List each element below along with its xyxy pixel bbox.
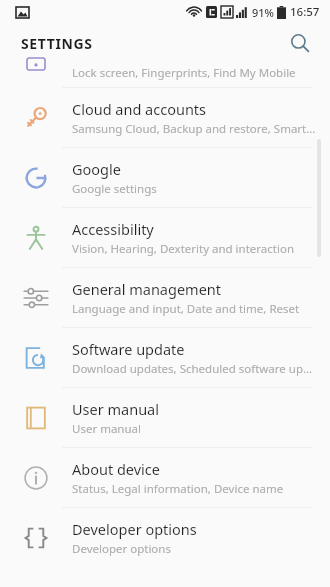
staticText: Developer options: [72, 519, 197, 539]
staticText: Status, Legal information, Device name: [72, 481, 284, 497]
button[interactable]: Accessibility: [0, 208, 330, 268]
staticText: Language and input, Date and time, Reset: [72, 301, 300, 317]
button[interactable]: Developer options: [0, 508, 330, 568]
button[interactable]: General management: [0, 268, 330, 328]
staticText: SETTINGS: [21, 34, 93, 53]
staticText: Accessibility: [72, 219, 154, 239]
staticText: Download updates, Scheduled software up…: [72, 361, 313, 377]
button[interactable]: User manual: [0, 388, 330, 448]
staticText: 91%: [252, 5, 274, 20]
staticText: Vision, Hearing, Dexterity and interacti…: [72, 241, 295, 257]
staticText: Developer options: [72, 541, 171, 557]
staticText: Samsung Cloud, Backup and restore, Smart…: [72, 121, 316, 137]
staticText: Google: [72, 159, 121, 179]
staticText: User manual: [72, 399, 159, 419]
staticText: About device: [72, 459, 160, 479]
staticText: General management: [72, 279, 222, 299]
staticText: Cloud and accounts: [72, 99, 207, 119]
button[interactable]: Software update: [0, 328, 330, 388]
button[interactable]: About device: [0, 448, 330, 508]
button[interactable]: Search: [284, 27, 316, 59]
staticText: 16:57: [290, 4, 320, 20]
staticText: User manual: [72, 421, 141, 437]
button[interactable]: Google: [0, 148, 330, 208]
staticText: Lock screen, Fingerprints, Find My Mobil…: [72, 65, 296, 81]
button[interactable]: Cloud and accounts: [0, 88, 330, 148]
staticText: Google settings: [72, 181, 157, 197]
staticText: Software update: [72, 339, 185, 359]
